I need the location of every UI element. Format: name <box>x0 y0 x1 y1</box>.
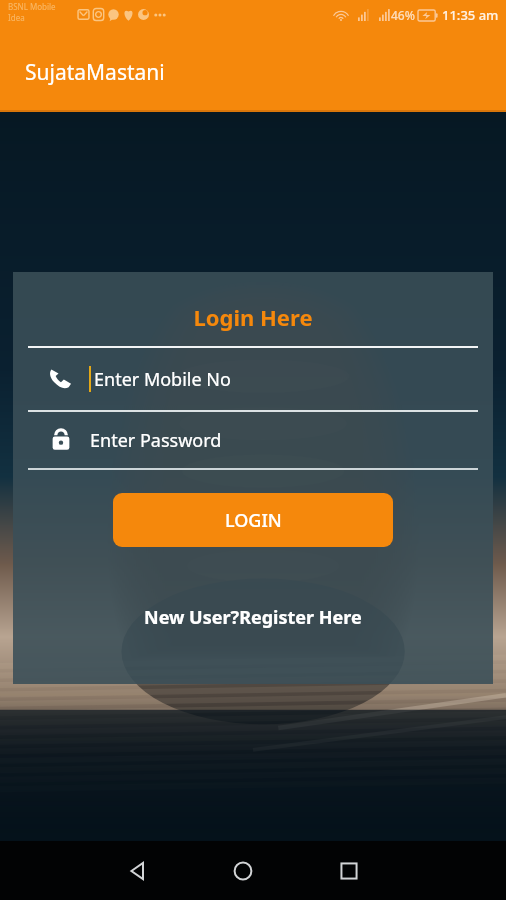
button[interactable]: Recent apps <box>322 844 376 898</box>
staticText: Enter Mobile No <box>94 367 231 392</box>
button[interactable]: LOGIN <box>113 493 393 547</box>
button[interactable]: Enter Mobile No <box>28 348 478 410</box>
button[interactable]: Home <box>216 844 270 898</box>
staticText: BSNL Mobile <box>8 1 56 12</box>
staticText: New User?Register Here <box>144 605 362 630</box>
staticText: 46% <box>391 7 415 23</box>
button[interactable]: Enter Password <box>28 412 478 468</box>
button[interactable]: Back <box>110 844 164 898</box>
staticText: SujataMastani <box>25 58 165 87</box>
staticText: LOGIN <box>225 508 282 533</box>
staticText: 11:35 am <box>442 6 499 24</box>
button[interactable]: New User?Register Here <box>132 599 374 636</box>
staticText: Idea <box>8 12 25 23</box>
staticText: Login Here <box>13 302 493 332</box>
staticText: Enter Password <box>90 428 222 453</box>
